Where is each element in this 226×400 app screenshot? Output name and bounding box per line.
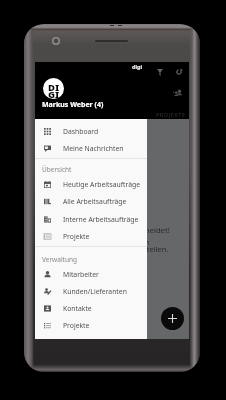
button[interactable]: Projekte	[35, 228, 147, 245]
staticText: Meine Nachrichten	[63, 144, 124, 153]
staticText: GI	[48, 88, 60, 99]
staticText: Heutige Arbeitsaufträge	[63, 180, 140, 189]
staticText: PROJEKTE	[156, 111, 186, 119]
button[interactable]: Meine Nachrichten	[35, 140, 147, 157]
button[interactable]: Aktualisieren	[171, 64, 187, 80]
staticText: Übersicht	[42, 165, 72, 174]
staticText: Kunden/Lieferanten	[63, 287, 127, 296]
staticText: Projekte	[63, 321, 90, 330]
button[interactable]: Mitarbeiter	[35, 266, 147, 283]
button[interactable]: Kontakte	[35, 300, 147, 317]
staticText: digi	[132, 63, 143, 70]
button[interactable]: Filter	[152, 64, 168, 80]
staticText: Bitte tippen Sie bitte hier um sich anzu…	[47, 237, 169, 254]
staticText: Dashboard	[63, 127, 99, 136]
button[interactable]: Dashboard	[35, 123, 147, 140]
staticText: DI	[48, 81, 60, 94]
button[interactable]: Kunden/Lieferanten	[35, 283, 147, 300]
staticText: Mitarbeiter	[63, 270, 99, 279]
staticText: Sie sind zur Zeit nicht angemeldet!	[47, 225, 170, 235]
button[interactable]: Interne Arbeitsaufträge	[35, 211, 147, 228]
staticText: Verwaltung	[42, 255, 77, 264]
staticText: Kontakte	[63, 304, 92, 313]
staticText: Interne Arbeitsaufträge	[63, 215, 139, 224]
staticText: Projekte	[63, 232, 90, 241]
button[interactable]: Neuen Auftrag hinzufuegen	[161, 307, 184, 330]
staticText: Alle Arbeitsaufträge	[63, 197, 127, 206]
button[interactable]: Benutzerkonto	[169, 85, 185, 101]
button[interactable]: Projekte	[35, 317, 147, 334]
button[interactable]: Heutige Arbeitsaufträge	[35, 176, 147, 193]
button[interactable]: Alle Arbeitsaufträge	[35, 193, 147, 210]
staticText: Markus Weber (4)	[42, 100, 104, 110]
